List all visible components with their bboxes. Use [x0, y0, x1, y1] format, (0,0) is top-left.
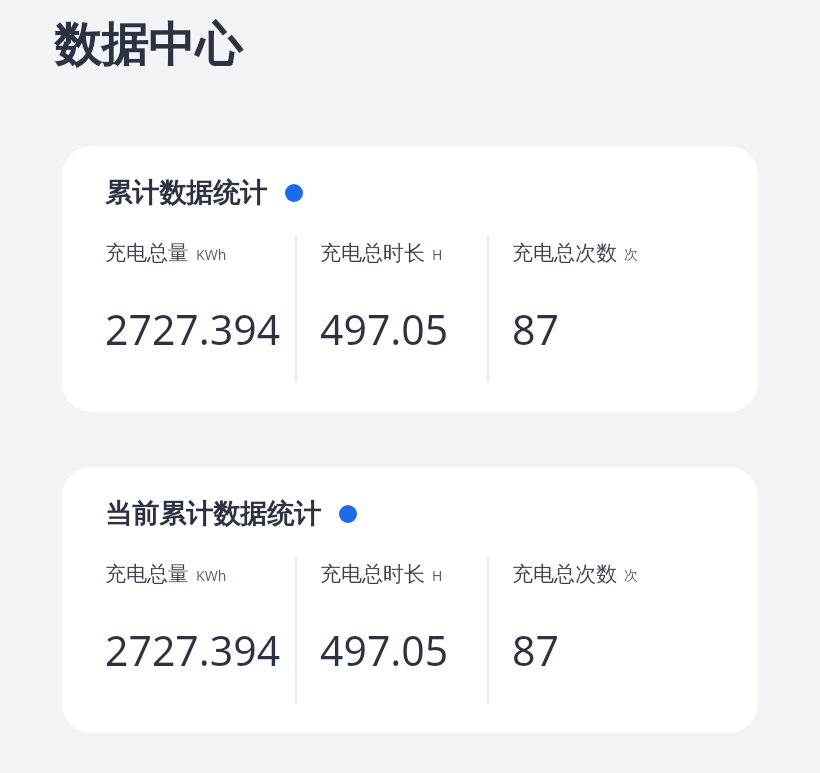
staticText: 497.05: [320, 622, 449, 678]
staticText: 2727.394: [105, 301, 281, 357]
button[interactable]: 累计数据统计: [62, 146, 758, 412]
staticText: 数据中心: [54, 16, 242, 75]
button[interactable]: 充电总量: [105, 557, 295, 678]
staticText: KWh: [196, 566, 227, 585]
button[interactable]: 当前累计数据统计: [62, 467, 758, 733]
staticText: 次: [624, 567, 638, 585]
staticText: 累计数据统计: [105, 176, 267, 210]
staticText: 87: [512, 622, 559, 678]
staticText: 充电总次数: [512, 561, 617, 587]
staticText: H: [432, 245, 443, 264]
button[interactable]: 充电总次数: [512, 236, 679, 357]
button[interactable]: 充电总量: [105, 236, 295, 357]
button[interactable]: 充电总次数: [512, 557, 679, 678]
other: 状态指示: [285, 184, 303, 202]
other: 状态指示: [339, 505, 357, 523]
staticText: 充电总时长: [320, 561, 425, 587]
staticText: 497.05: [320, 301, 449, 357]
staticText: 充电总量: [105, 240, 189, 266]
staticText: 87: [512, 301, 559, 357]
staticText: 充电总次数: [512, 240, 617, 266]
staticText: KWh: [196, 245, 227, 264]
staticText: 2727.394: [105, 622, 281, 678]
staticText: 充电总量: [105, 561, 189, 587]
staticText: 当前累计数据统计: [105, 497, 321, 531]
staticText: 充电总时长: [320, 240, 425, 266]
staticText: H: [432, 566, 443, 585]
staticText: 次: [624, 246, 638, 264]
button[interactable]: 充电总时长: [320, 557, 487, 678]
button[interactable]: 充电总时长: [320, 236, 487, 357]
